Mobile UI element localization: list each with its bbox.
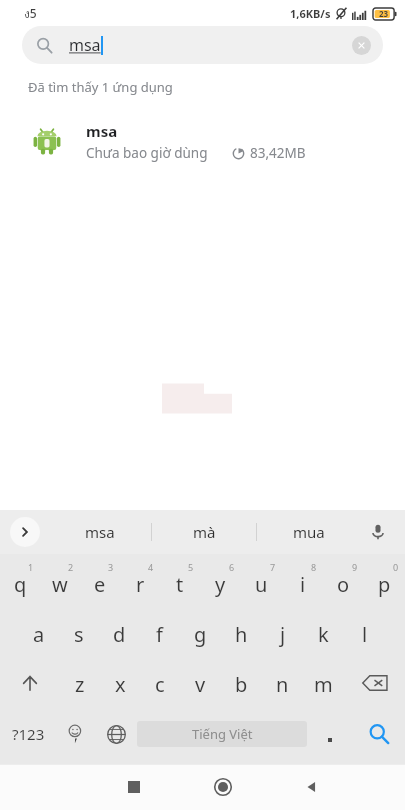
button[interactable]: ?123	[0, 708, 56, 760]
staticText: mua	[293, 522, 325, 542]
staticText: x	[115, 671, 126, 698]
staticText: 1	[28, 561, 34, 573]
staticText: c	[155, 671, 165, 698]
staticText: u	[255, 571, 268, 598]
button[interactable]: t	[160, 558, 200, 608]
staticText: z	[75, 671, 85, 698]
button[interactable]: Backspace	[344, 658, 405, 708]
button[interactable]: Change keyboard language	[96, 708, 137, 760]
staticText: j	[280, 621, 286, 648]
button[interactable]: c	[140, 658, 180, 708]
staticText: a	[33, 621, 45, 648]
staticText: v	[195, 671, 206, 698]
button[interactable]: e	[80, 558, 120, 608]
button[interactable]: msa	[22, 26, 383, 64]
button[interactable]: mà	[152, 510, 256, 554]
button[interactable]: y	[200, 558, 241, 608]
staticText: Đã tìm thấy 1 ứng dụng	[28, 78, 173, 96]
button[interactable]: z	[60, 658, 100, 708]
button[interactable]: h	[221, 608, 262, 658]
staticText: 23	[379, 8, 389, 19]
button[interactable]: Search	[352, 708, 405, 760]
button[interactable]: q	[0, 558, 40, 608]
staticText: d	[113, 621, 126, 648]
staticText: w	[52, 571, 68, 598]
staticText: h	[235, 621, 248, 648]
button[interactable]: p	[364, 558, 405, 608]
button[interactable]: mua	[257, 510, 361, 554]
staticText: 7	[270, 561, 276, 573]
staticText: g	[194, 621, 207, 648]
button[interactable]: i	[282, 558, 323, 608]
button[interactable]: l	[344, 608, 385, 658]
staticText: 5	[188, 561, 194, 573]
staticText: msa	[86, 121, 118, 141]
staticText: b	[235, 671, 248, 698]
staticText: 8	[311, 561, 317, 573]
staticText: 6	[229, 561, 235, 573]
staticText: 2	[68, 561, 74, 573]
staticText: o	[337, 571, 350, 598]
button[interactable]: m	[303, 658, 344, 708]
staticText: mà	[193, 522, 216, 542]
staticText: msa	[69, 34, 101, 56]
button[interactable]: Home	[178, 764, 267, 810]
staticText: 1,6KB/s	[290, 6, 331, 21]
staticText: s	[74, 621, 84, 648]
button[interactable]: Shift	[0, 658, 60, 708]
button[interactable]: Emoji and comma	[56, 708, 96, 760]
button[interactable]: Voice input	[365, 519, 391, 545]
button[interactable]: d	[99, 608, 139, 658]
staticText: l	[362, 621, 368, 648]
button[interactable]: b	[221, 658, 262, 708]
staticText: 3	[108, 561, 114, 573]
button[interactable]: More suggestions	[10, 517, 40, 547]
button[interactable]: a	[19, 608, 59, 658]
button[interactable]: Back	[267, 764, 356, 810]
staticText: q	[14, 571, 27, 598]
button[interactable]: w	[40, 558, 80, 608]
staticText: p	[378, 571, 391, 598]
button[interactable]: msa	[0, 112, 405, 170]
staticText: 0	[393, 561, 399, 573]
staticText: Chưa bao giờ dùng	[86, 144, 208, 162]
button[interactable]: s	[59, 608, 99, 658]
staticText: Tiếng Việt	[192, 725, 253, 743]
button[interactable]: Recent apps	[89, 764, 178, 810]
staticText: ?123	[12, 724, 45, 744]
button[interactable]: r	[120, 558, 160, 608]
staticText: m	[314, 671, 333, 698]
staticText: 83,42MB	[250, 144, 306, 162]
staticText: r	[136, 571, 145, 598]
staticText: e	[94, 571, 106, 598]
button[interactable]	[307, 708, 352, 760]
button[interactable]: g	[180, 608, 221, 658]
button[interactable]: o	[323, 558, 364, 608]
staticText: k	[318, 621, 329, 648]
button[interactable]: k	[303, 608, 344, 658]
staticText: n	[276, 671, 289, 698]
staticText: i	[300, 571, 306, 598]
staticText: msa	[85, 522, 115, 542]
button[interactable]: x	[100, 658, 140, 708]
staticText: y	[215, 571, 226, 598]
button[interactable]: f	[139, 608, 180, 658]
staticText: 4	[148, 561, 154, 573]
button[interactable]: Clear	[352, 36, 371, 55]
staticText: t	[176, 571, 184, 598]
button[interactable]: v	[180, 658, 221, 708]
button[interactable]: u	[241, 558, 282, 608]
staticText: 9	[352, 561, 358, 573]
button[interactable]: n	[262, 658, 303, 708]
button[interactable]: j	[262, 608, 303, 658]
staticText: ง5	[24, 4, 37, 23]
button[interactable]: Tiếng Việt	[137, 721, 307, 747]
staticText: f	[156, 621, 163, 648]
button[interactable]: msa	[48, 510, 151, 554]
